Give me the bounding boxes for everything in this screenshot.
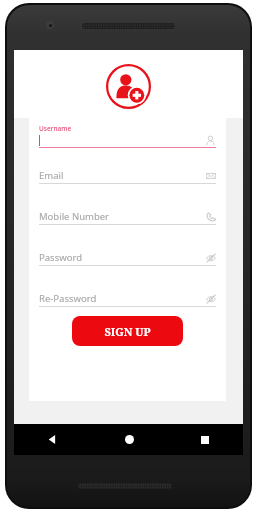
button[interactable]: Mobile Number — [39, 209, 216, 225]
button[interactable]: Add user — [106, 64, 151, 109]
button[interactable]: Password — [39, 250, 216, 266]
staticText: Re-Password — [39, 292, 97, 305]
button[interactable]: SIGN UP — [72, 316, 183, 346]
button[interactable]: Re-Password — [39, 291, 216, 307]
button[interactable]: Back — [14, 424, 91, 455]
staticText: Mobile Number — [39, 210, 110, 223]
staticText: Username — [39, 124, 72, 133]
button[interactable]: Username — [39, 124, 216, 148]
staticText: SIGN UP — [104, 324, 151, 339]
button[interactable]: Home — [91, 424, 167, 455]
staticText: Email — [39, 169, 64, 182]
staticText: Password — [39, 251, 82, 264]
button[interactable]: Recents — [167, 424, 243, 455]
button[interactable]: Email — [39, 168, 216, 184]
